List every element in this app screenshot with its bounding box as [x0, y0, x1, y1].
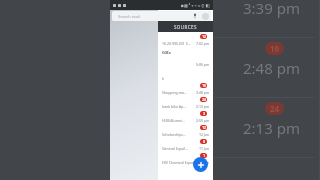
button[interactable]: Scholarships… [158, 125, 213, 139]
staticText: h [162, 76, 165, 81]
staticText: bank bike Ap… [162, 104, 187, 109]
button[interactable]: Compose [193, 157, 208, 172]
staticText: 5:06 pm [196, 62, 210, 67]
staticText: 11 Jun [199, 146, 210, 151]
staticText: 19 [202, 84, 206, 88]
staticText: 2:13 pm [196, 104, 210, 109]
button[interactable]: Search mail [112, 11, 211, 21]
staticText: 8 [203, 140, 205, 144]
button[interactable]: h [158, 69, 213, 83]
staticText: 24 [270, 103, 280, 114]
staticText: HIV Chemical Equal… [162, 160, 197, 165]
button[interactable]: HIV Chemical Equal… [158, 153, 213, 167]
staticText: lea Ap… [152, 118, 208, 138]
staticText: 16.20.995.031 S… [162, 41, 191, 46]
button[interactable]: 16.20.995.031 S… [158, 34, 213, 48]
button[interactable]: Voice search [191, 12, 199, 20]
staticText: 12 Jun [199, 132, 210, 137]
button[interactable]: lea Ap… [150, 98, 314, 158]
staticText: 3 [203, 112, 205, 116]
staticText: 10 Jun [199, 160, 210, 165]
staticText: 7:02 pm [196, 41, 210, 46]
staticText: 2:48 pm [243, 58, 300, 78]
staticText: 19 [270, 43, 280, 54]
staticText: 24 [202, 98, 206, 102]
staticText: 2:55 pm [196, 118, 210, 123]
button[interactable]: Account [202, 13, 209, 20]
staticText: ◾▦ ⁴ ⁊ ⌁ ⌗ ⌚ ▮▯ [181, 3, 210, 8]
button[interactable]: 3:39 pm [150, 0, 314, 38]
staticText: GSIs [162, 50, 171, 55]
staticText: SOURCES [174, 24, 197, 30]
staticText: 3:39 pm [243, 0, 300, 18]
staticText: 1 [203, 154, 205, 158]
button[interactable]: g vou… [150, 38, 314, 98]
staticText: g vou… [152, 58, 203, 78]
button[interactable]: 5:06 pm [158, 55, 213, 69]
staticText: 12 [202, 35, 206, 39]
staticText: Shopping-ma… [162, 90, 187, 95]
staticText: HUB Alumni… [162, 118, 185, 123]
staticText: Search mail [118, 14, 140, 19]
button[interactable]: bank bike Ap… [158, 97, 213, 111]
staticText: 2:13 pm [243, 118, 300, 138]
staticText: Scholarships… [162, 132, 186, 137]
button[interactable]: HUB Alumni… [158, 111, 213, 125]
staticText: General Equal… [162, 146, 188, 151]
staticText: 12 [202, 126, 206, 130]
button[interactable]: SOURCES [158, 21, 213, 32]
button[interactable]: Shopping-ma… [158, 83, 213, 97]
staticText: 2:48 pm [196, 90, 210, 95]
button[interactable]: General Equal… [158, 139, 213, 153]
